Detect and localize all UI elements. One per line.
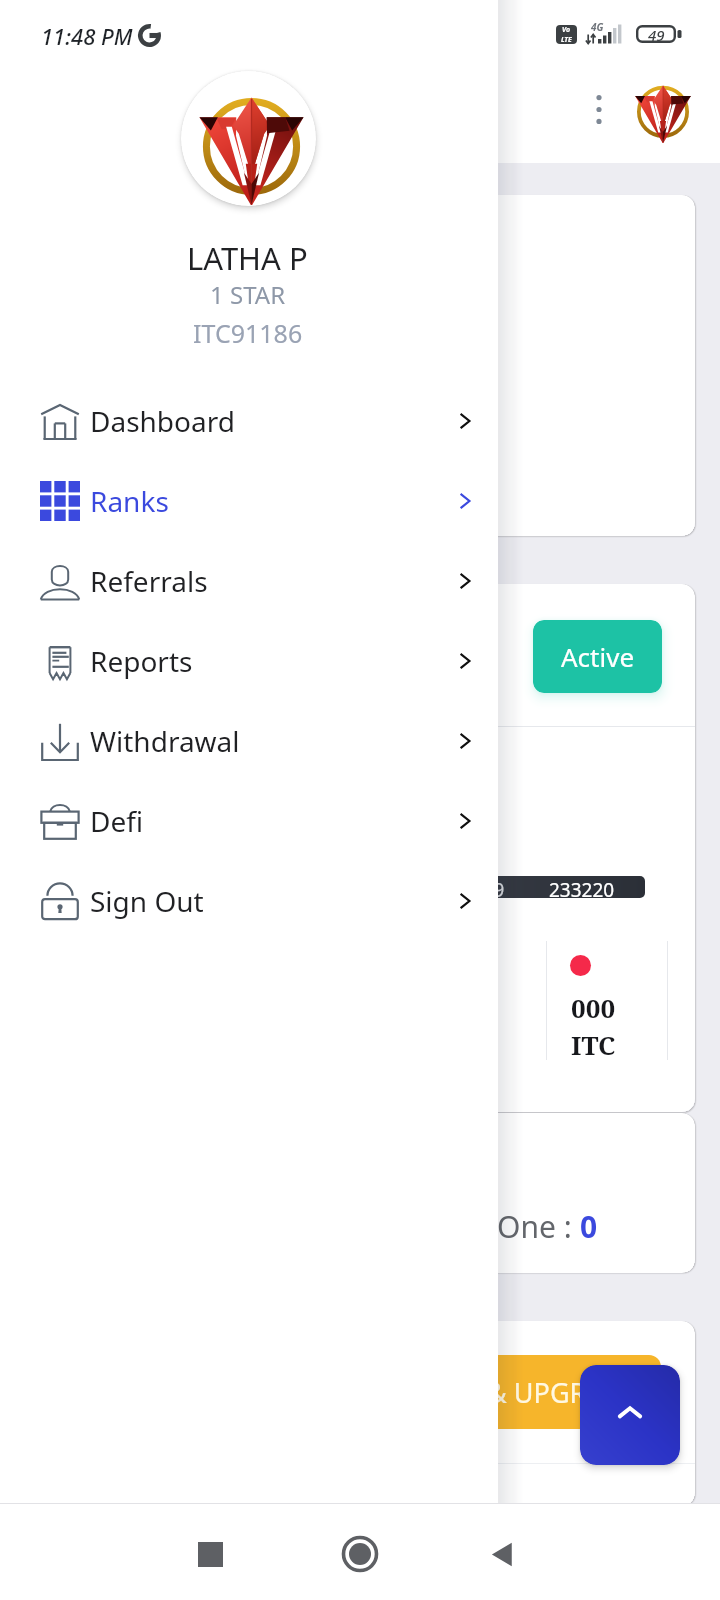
staticText: Reports [90,642,193,680]
staticText: Referrals [90,562,208,600]
staticText: LTE [561,35,572,44]
staticText: 4G [591,20,604,34]
staticText: 49 [648,25,665,43]
button[interactable]: Active [533,620,662,693]
staticText: Sign Out [90,882,204,920]
staticText: One : [497,1206,580,1247]
staticText: LATHA P [187,237,308,279]
staticText: Defi [90,802,144,840]
staticText: Dashboard [90,402,235,440]
staticText: ITC 900 & UPGRADE [386,1374,639,1411]
staticText: 11:48 PM [41,21,133,51]
button[interactable]: Dashboard [0,381,497,461]
staticText: Vo [562,25,571,35]
button[interactable]: Home [332,1526,388,1582]
staticText: ITC 9 [460,877,505,898]
staticText: Ranks [90,482,169,520]
button[interactable]: Ranks [0,461,497,541]
staticText: 1 STAR [210,278,286,311]
staticText: ITC91186 [193,316,303,350]
button[interactable]: Reports [0,621,497,701]
staticText: ITC [571,1027,616,1062]
button[interactable]: Defi [0,781,497,861]
button[interactable]: Sign Out [0,861,497,941]
button[interactable]: Withdrawal [0,701,497,781]
staticText: Withdrawal [90,722,240,760]
button[interactable]: Back [474,1526,530,1582]
staticText: 233220 [549,877,615,898]
staticText: 0 [580,1206,598,1247]
button[interactable]: Referrals [0,541,497,621]
button[interactable]: ITC 900 & UPGRADE [49,1355,661,1429]
staticText: Active [561,639,635,674]
button[interactable]: More options [575,85,623,133]
button[interactable]: Recent apps [182,1526,238,1582]
button[interactable]: Scroll to top [580,1365,680,1465]
staticText: 000 [571,990,616,1025]
